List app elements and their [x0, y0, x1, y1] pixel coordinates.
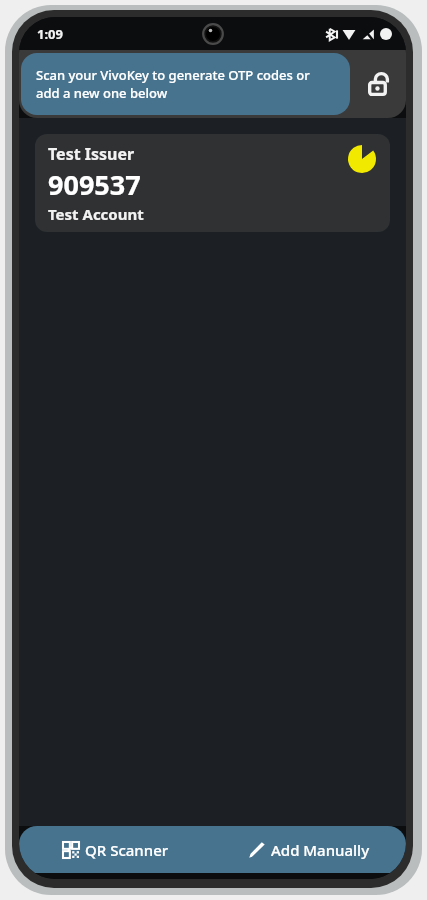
staticText: Add Manually [271, 840, 370, 860]
staticText: 909537 [48, 166, 141, 203]
staticText: Test Issuer [48, 143, 135, 165]
button[interactable]: Test Issuer [35, 134, 390, 232]
staticText: Test Account [48, 204, 144, 224]
button[interactable]: QR Scanner [19, 826, 212, 873]
button[interactable]: Scan your VivoKey to generate OTP codes … [21, 53, 350, 115]
staticText: Scan your VivoKey to generate OTP codes … [36, 66, 335, 102]
button[interactable]: Unlock [350, 50, 406, 118]
staticText: 1:09 [37, 25, 63, 43]
button[interactable]: Add Manually [212, 826, 406, 873]
staticText: QR Scanner [85, 840, 169, 860]
